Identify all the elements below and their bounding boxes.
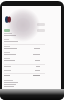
button[interactable]: Paid status bbox=[4, 29, 10, 32]
button[interactable]: Invoice number bbox=[37, 23, 45, 26]
